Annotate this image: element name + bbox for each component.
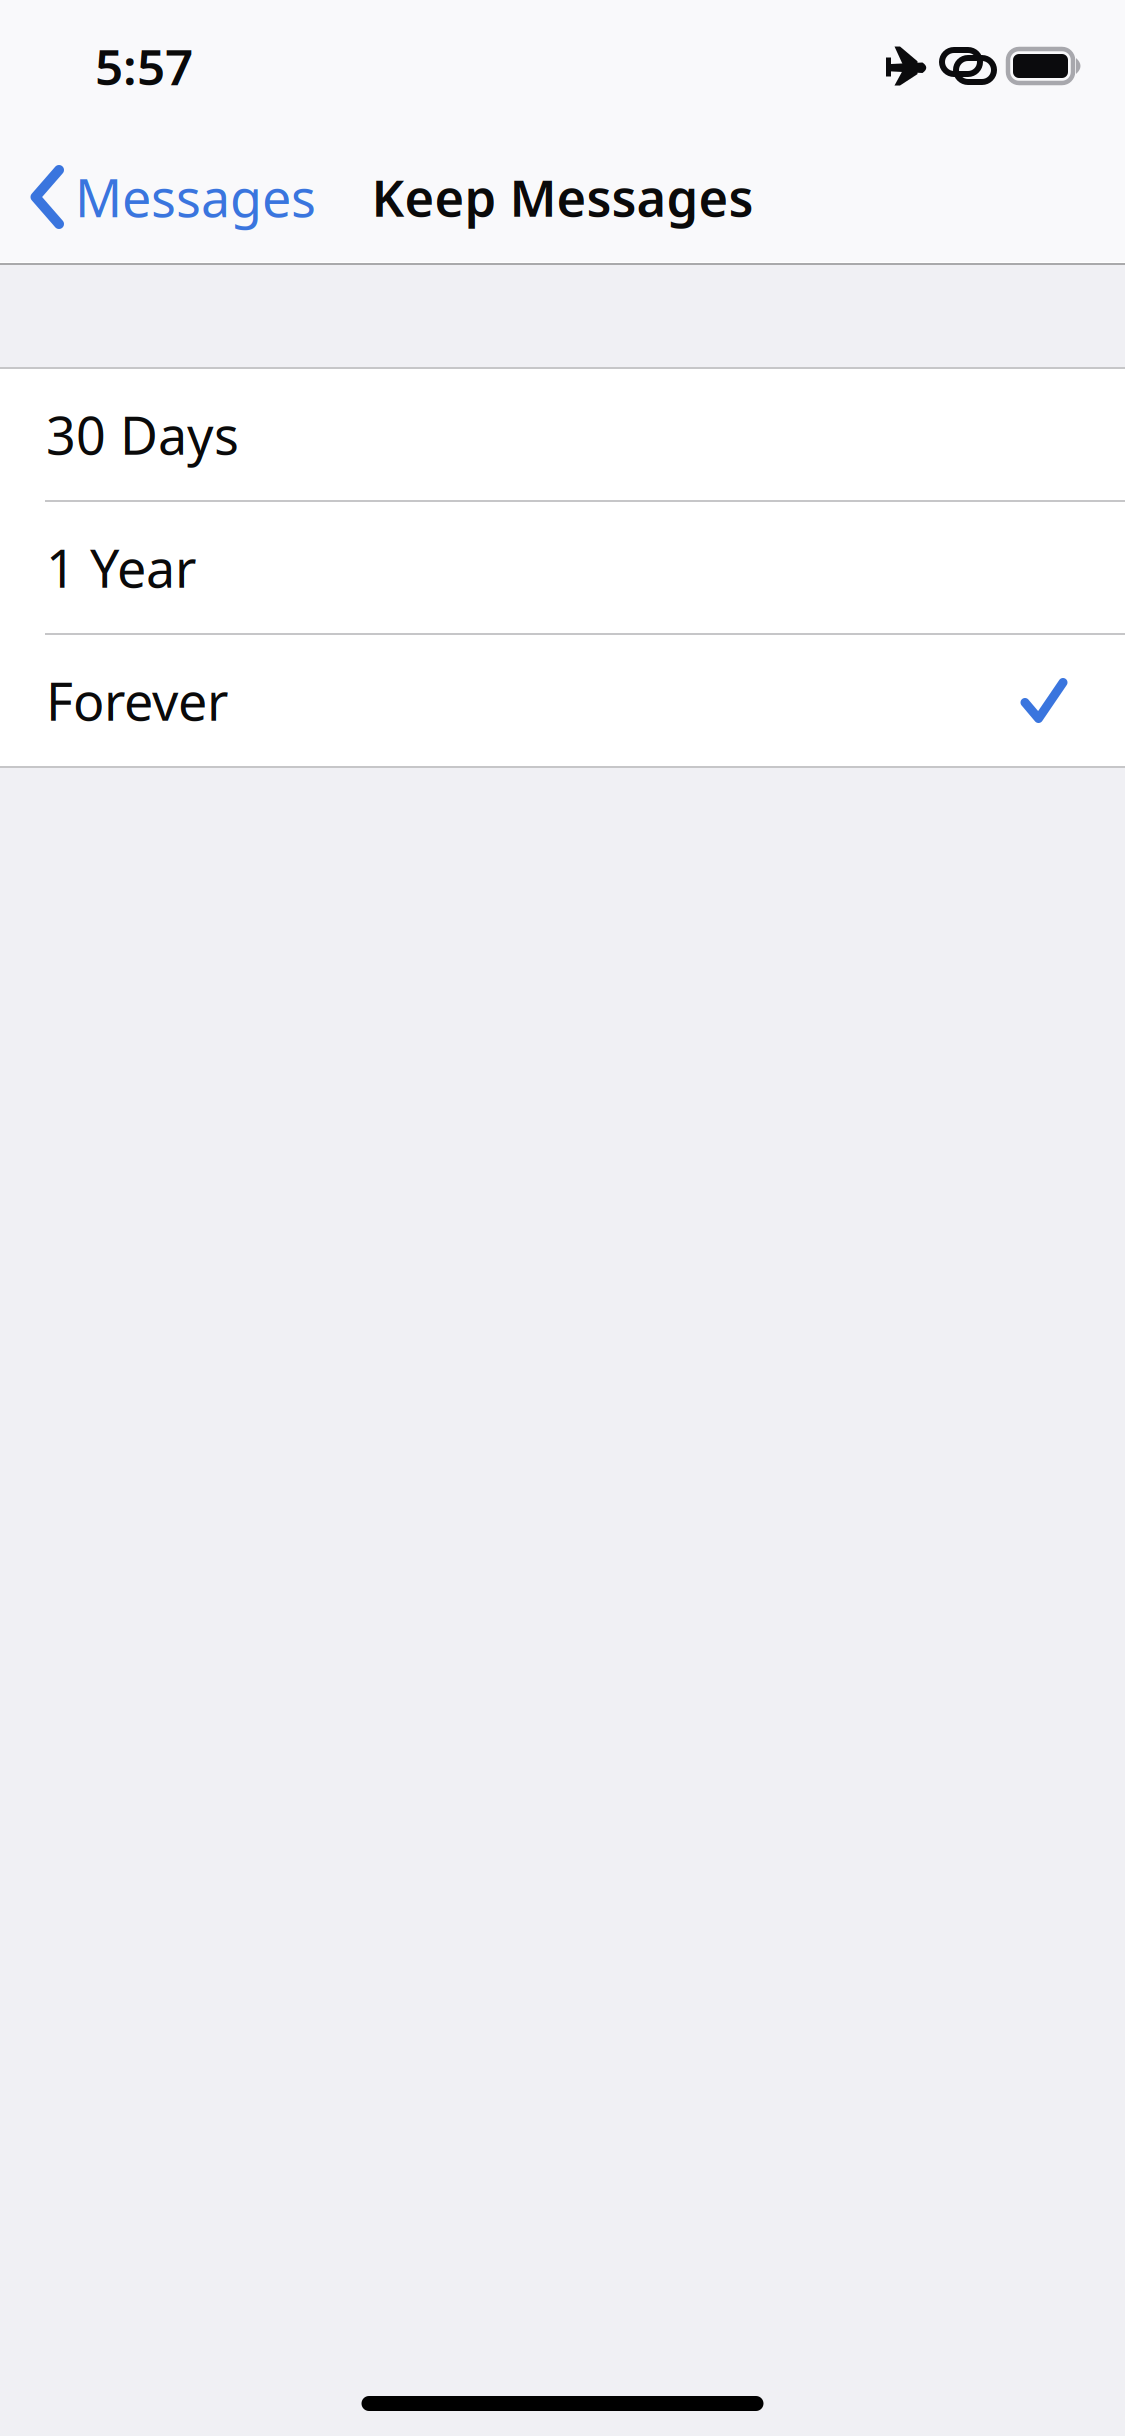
staticText: 30 Days xyxy=(46,400,239,469)
button[interactable]: 30 Days xyxy=(0,369,1125,500)
button[interactable]: Forever xyxy=(0,635,1125,766)
button[interactable]: 1 Year xyxy=(0,502,1125,633)
staticText: 5:57 xyxy=(95,33,193,99)
staticText: 1 Year xyxy=(46,533,196,602)
staticText: Forever xyxy=(46,666,228,735)
button[interactable]: Back to Messages xyxy=(0,132,336,262)
staticText: Messages xyxy=(75,162,316,232)
staticText: Keep Messages xyxy=(371,163,753,231)
